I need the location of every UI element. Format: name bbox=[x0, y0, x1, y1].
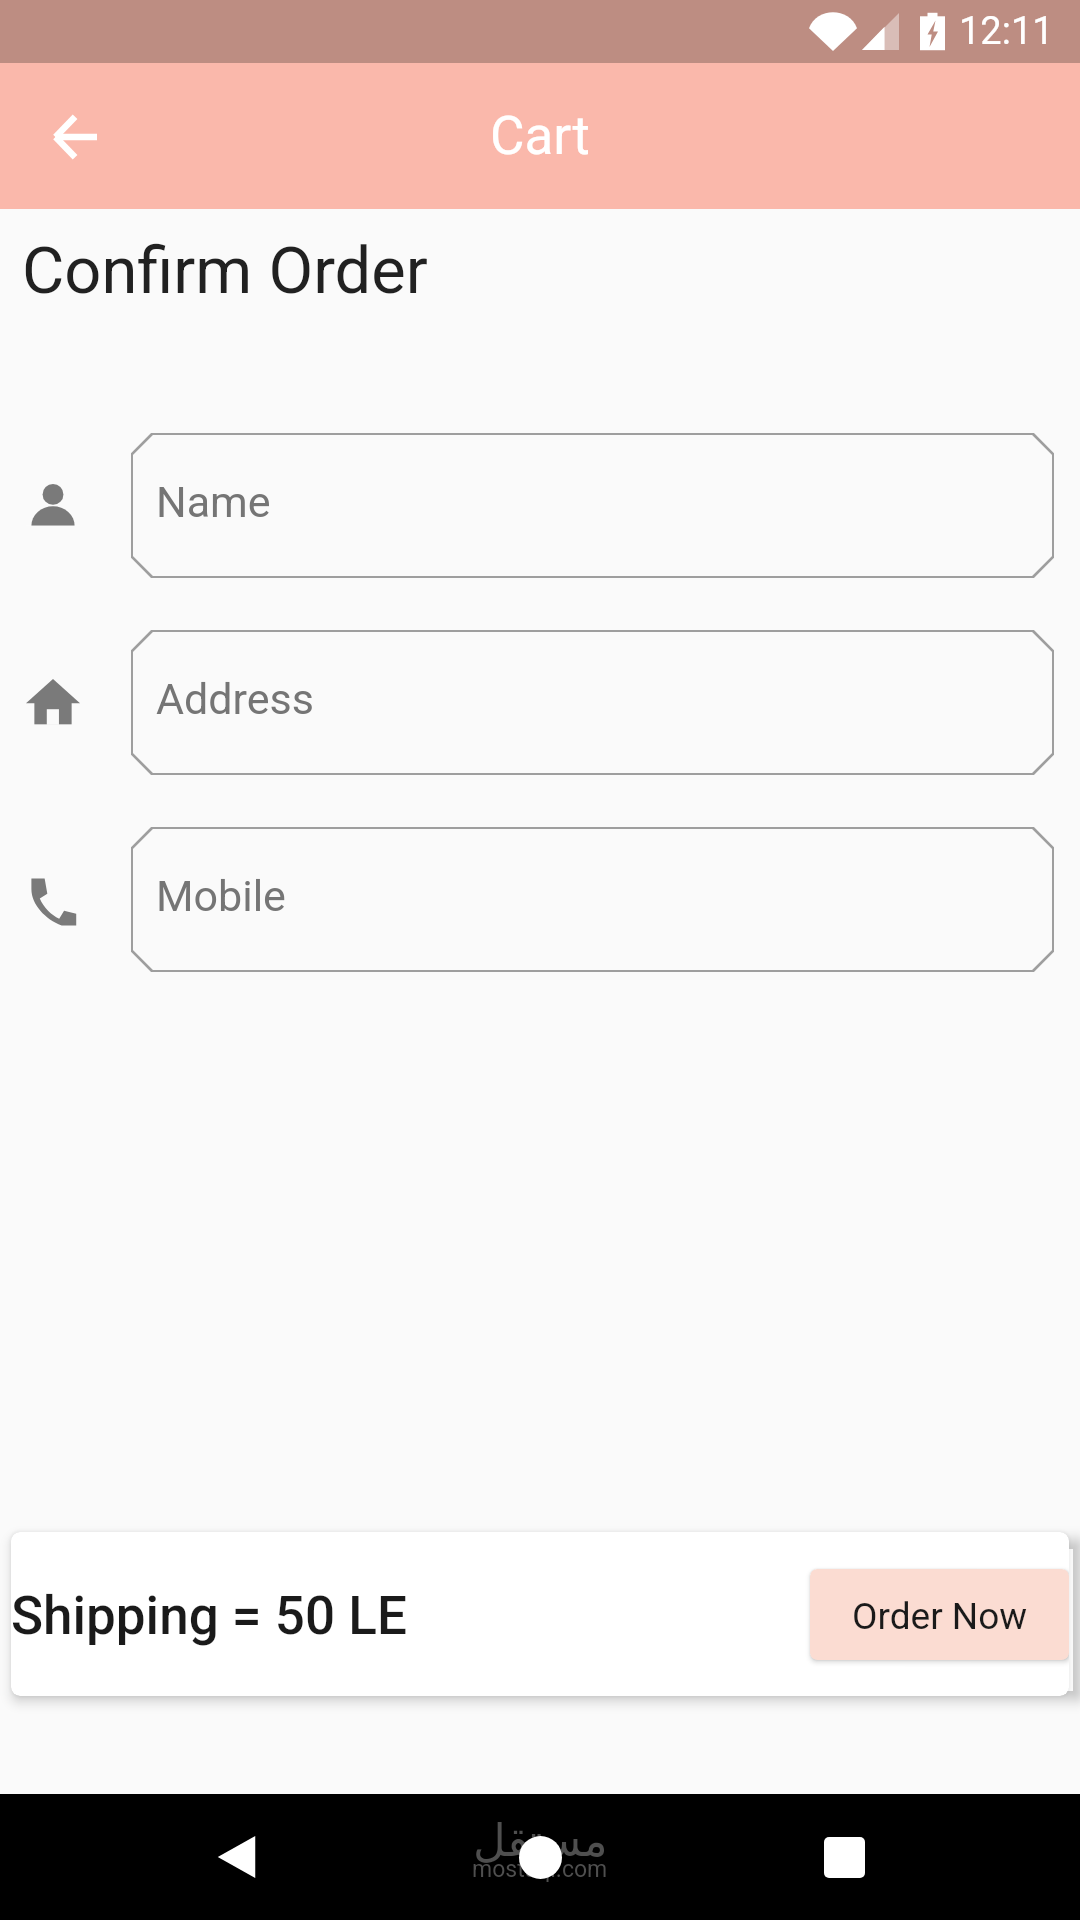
button[interactable]: Home bbox=[505, 1822, 575, 1892]
button[interactable]: Recents bbox=[809, 1822, 879, 1892]
button[interactable]: Mobile bbox=[131, 827, 1054, 972]
staticText: Order Now bbox=[852, 1595, 1028, 1638]
button[interactable]: Name bbox=[131, 433, 1054, 578]
staticText: mostaql.com bbox=[472, 1856, 608, 1883]
staticText: Name bbox=[156, 477, 271, 527]
staticText: Cart bbox=[490, 105, 590, 167]
button[interactable]: Address bbox=[131, 630, 1054, 775]
staticText: Confirm Order bbox=[22, 233, 428, 309]
button[interactable]: Back bbox=[201, 1822, 271, 1892]
button[interactable]: Order Now bbox=[810, 1569, 1069, 1660]
staticText: Mobile bbox=[156, 871, 286, 921]
button[interactable]: Back bbox=[36, 97, 114, 175]
staticText: Address bbox=[156, 674, 314, 724]
staticText: مستقل bbox=[473, 1814, 608, 1866]
staticText: Shipping = 50 LE bbox=[11, 1585, 407, 1647]
staticText: 12:11 bbox=[959, 9, 1054, 54]
